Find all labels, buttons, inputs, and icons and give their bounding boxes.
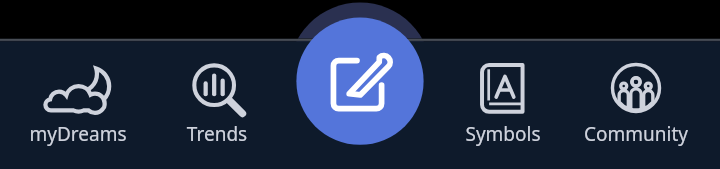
button[interactable]: Trends [157, 38, 277, 169]
button[interactable]: New dream [296, 18, 423, 145]
button[interactable]: myDreams [18, 38, 138, 169]
button[interactable]: Community [576, 38, 696, 169]
staticText: myDreams [18, 121, 138, 147]
button[interactable]: Symbols [443, 38, 563, 169]
staticText: Community [576, 121, 696, 147]
staticText: Trends [157, 121, 277, 147]
staticText: Symbols [443, 121, 563, 147]
